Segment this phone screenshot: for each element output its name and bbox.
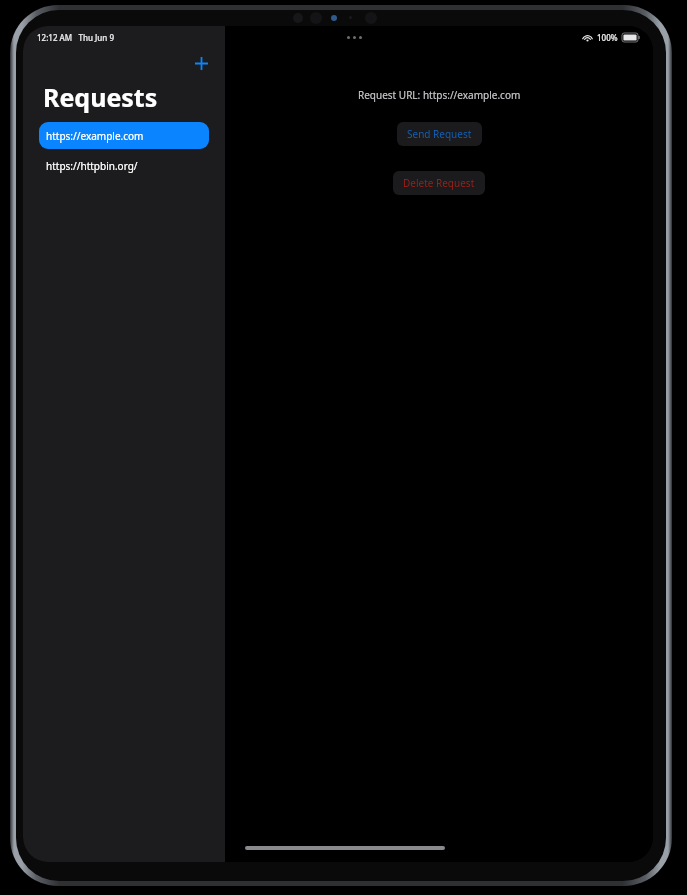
button[interactable]: https://example.com	[39, 122, 209, 149]
staticText: https://httpbin.org/	[46, 159, 138, 173]
staticText: Requests	[43, 80, 158, 114]
staticText: 100%	[597, 32, 618, 43]
button[interactable]: https://httpbin.org/	[39, 152, 209, 179]
staticText: Delete Request	[403, 176, 475, 190]
button[interactable]: Send Request	[397, 122, 482, 146]
staticText: 12:12 AM Thu Jun 9	[37, 32, 114, 43]
staticText: Request URL: https://example.com	[358, 88, 521, 102]
button[interactable]: Delete Request	[393, 171, 485, 195]
staticText: https://example.com	[46, 129, 144, 143]
button[interactable]: Add request	[187, 49, 215, 77]
staticText: Send Request	[407, 127, 472, 141]
